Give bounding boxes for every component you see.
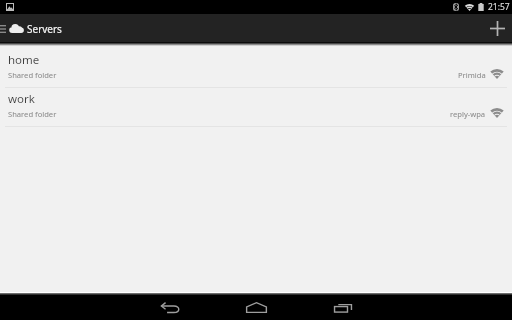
staticText: home [8, 52, 40, 68]
staticText: work [8, 91, 35, 107]
staticText: 21:57 [488, 1, 510, 13]
staticText: Shared folder [8, 70, 57, 80]
staticText: Primida [458, 70, 486, 80]
staticText: Shared folder [8, 109, 57, 119]
button[interactable]: Recent apps [323, 295, 363, 320]
staticText: Servers [27, 22, 62, 36]
button[interactable]: work [0, 88, 512, 126]
button[interactable]: Add server [480, 14, 512, 42]
button[interactable]: Servers [0, 22, 62, 36]
button[interactable]: Back [150, 295, 190, 320]
staticText: reply-wpa [450, 109, 486, 119]
button[interactable]: Home [236, 295, 276, 320]
button[interactable]: home [0, 49, 512, 87]
